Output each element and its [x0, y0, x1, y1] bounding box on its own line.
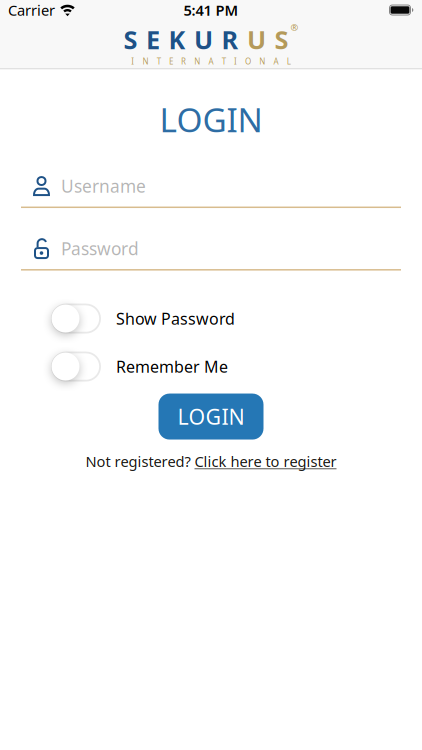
staticText: ®	[290, 21, 298, 34]
button[interactable]: Remember Me	[0, 352, 422, 382]
staticText: R	[181, 56, 186, 67]
staticText: N	[194, 56, 200, 67]
staticText: N	[259, 56, 265, 67]
button[interactable]: LOGIN	[158, 394, 263, 440]
staticText: Not registered? Click here to register	[85, 452, 336, 471]
staticText: E	[146, 22, 160, 56]
staticText: LOGIN	[159, 97, 262, 142]
button[interactable]: Not registered? Click here to register	[85, 452, 336, 471]
staticText: S	[274, 22, 288, 56]
staticText: Carrier	[8, 0, 55, 20]
staticText: Password	[61, 237, 139, 260]
staticText: T	[157, 56, 161, 67]
staticText: I	[234, 56, 237, 67]
staticText: T	[222, 56, 226, 67]
staticText: N	[142, 56, 148, 67]
staticText: U	[194, 22, 213, 56]
button[interactable]: Show Password	[0, 304, 422, 334]
staticText: E	[169, 56, 173, 67]
staticText: A	[273, 56, 278, 67]
staticText: LOGIN	[177, 402, 244, 431]
staticText: 5:41 PM	[183, 0, 238, 20]
staticText: O	[245, 56, 251, 67]
staticText: U	[247, 22, 266, 56]
staticText: S	[123, 22, 137, 56]
staticText: Remember Me	[116, 356, 228, 377]
staticText: A	[208, 56, 213, 67]
staticText: Username	[61, 174, 146, 197]
staticText: I	[131, 56, 134, 67]
staticText: Show Password	[116, 308, 235, 329]
staticText: K	[168, 22, 185, 56]
staticText: R	[221, 22, 238, 56]
staticText: L	[287, 56, 291, 67]
